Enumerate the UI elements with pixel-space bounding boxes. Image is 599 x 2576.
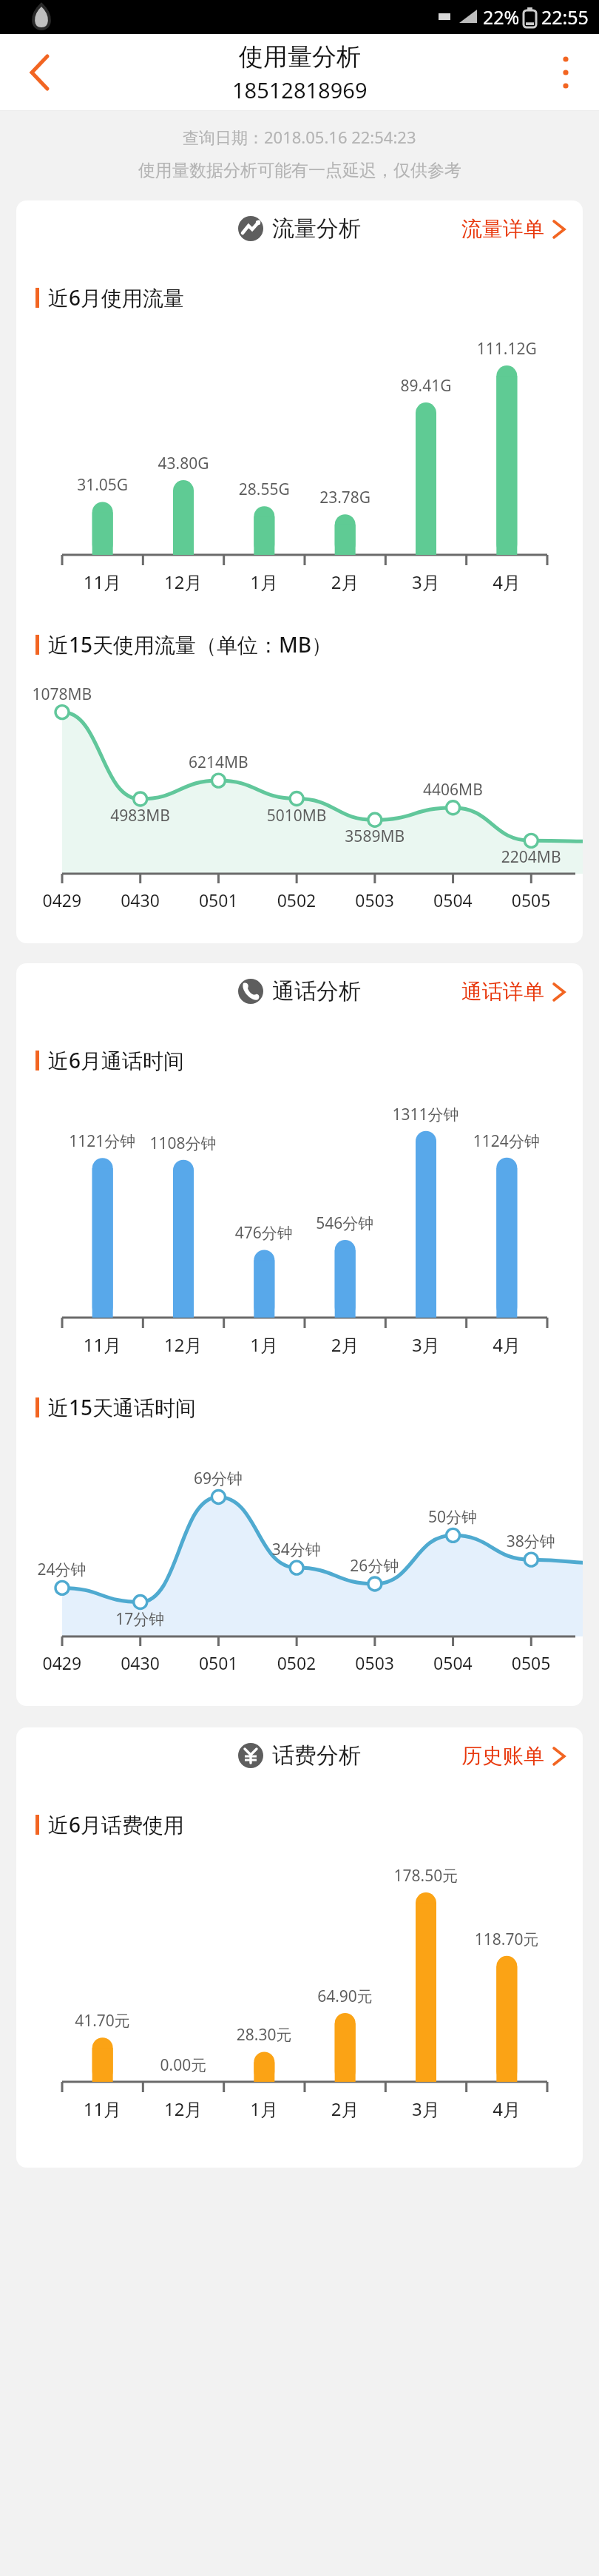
- staticText: 使用量分析: [239, 41, 361, 73]
- staticText: 近15天使用流量（单位：MB）: [48, 630, 333, 658]
- button[interactable]: 更多: [544, 51, 587, 94]
- staticText: 22:55: [541, 4, 589, 30]
- staticText: 话费分析: [272, 1742, 361, 1770]
- staticText: 通话分析: [272, 977, 361, 1005]
- button[interactable]: 流量分析: [238, 215, 361, 243]
- button[interactable]: 历史账单: [461, 1743, 566, 1769]
- staticText: 18512818969: [232, 75, 368, 104]
- button[interactable]: 流量详单: [461, 216, 566, 242]
- button[interactable]: 通话分析: [238, 977, 361, 1005]
- staticText: 流量详单: [461, 216, 544, 242]
- staticText: 22%: [483, 4, 520, 30]
- staticText: 近6月话费使用: [48, 1810, 185, 1838]
- staticText: 近15天通话时间: [48, 1393, 197, 1421]
- button[interactable]: 话费分析: [238, 1742, 361, 1770]
- staticText: 使用量数据分析可能有一点延迟，仅供参考: [138, 160, 461, 181]
- staticText: 历史账单: [461, 1743, 544, 1769]
- button[interactable]: 返回: [13, 50, 59, 95]
- staticText: 近6月使用流量: [48, 283, 185, 311]
- button[interactable]: 通话详单: [461, 979, 566, 1005]
- staticText: 通话详单: [461, 979, 544, 1005]
- staticText: 查询日期：2018.05.16 22:54:23: [183, 126, 416, 148]
- staticText: 流量分析: [272, 215, 361, 243]
- staticText: 近6月通话时间: [48, 1046, 185, 1074]
